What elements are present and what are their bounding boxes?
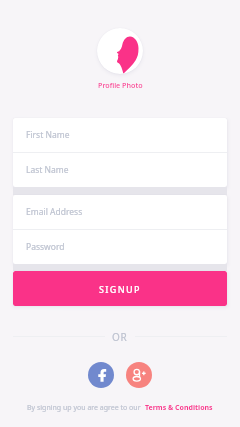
button[interactable]: Terms & Conditions bbox=[145, 403, 213, 413]
button[interactable]: Last Name bbox=[13, 153, 227, 187]
staticText: Password bbox=[26, 241, 65, 253]
button[interactable]: Password bbox=[13, 230, 227, 264]
staticText: By signing up you are agree to our bbox=[27, 403, 145, 413]
button[interactable]: Sign up with Google Plus bbox=[126, 362, 152, 388]
button[interactable]: First Name bbox=[13, 118, 227, 152]
staticText: Last Name bbox=[26, 164, 69, 176]
button[interactable]: SIGNUP bbox=[13, 271, 227, 306]
staticText: SIGNUP bbox=[99, 283, 141, 295]
button[interactable]: Email Address bbox=[13, 195, 227, 229]
button[interactable]: Sign up with Facebook bbox=[88, 362, 114, 388]
button[interactable]: Profile Photo bbox=[97, 28, 143, 74]
staticText: First Name bbox=[26, 129, 70, 141]
staticText: OR bbox=[112, 330, 128, 342]
staticText: Email Address bbox=[26, 206, 83, 218]
staticText: Profile Photo bbox=[98, 80, 143, 90]
